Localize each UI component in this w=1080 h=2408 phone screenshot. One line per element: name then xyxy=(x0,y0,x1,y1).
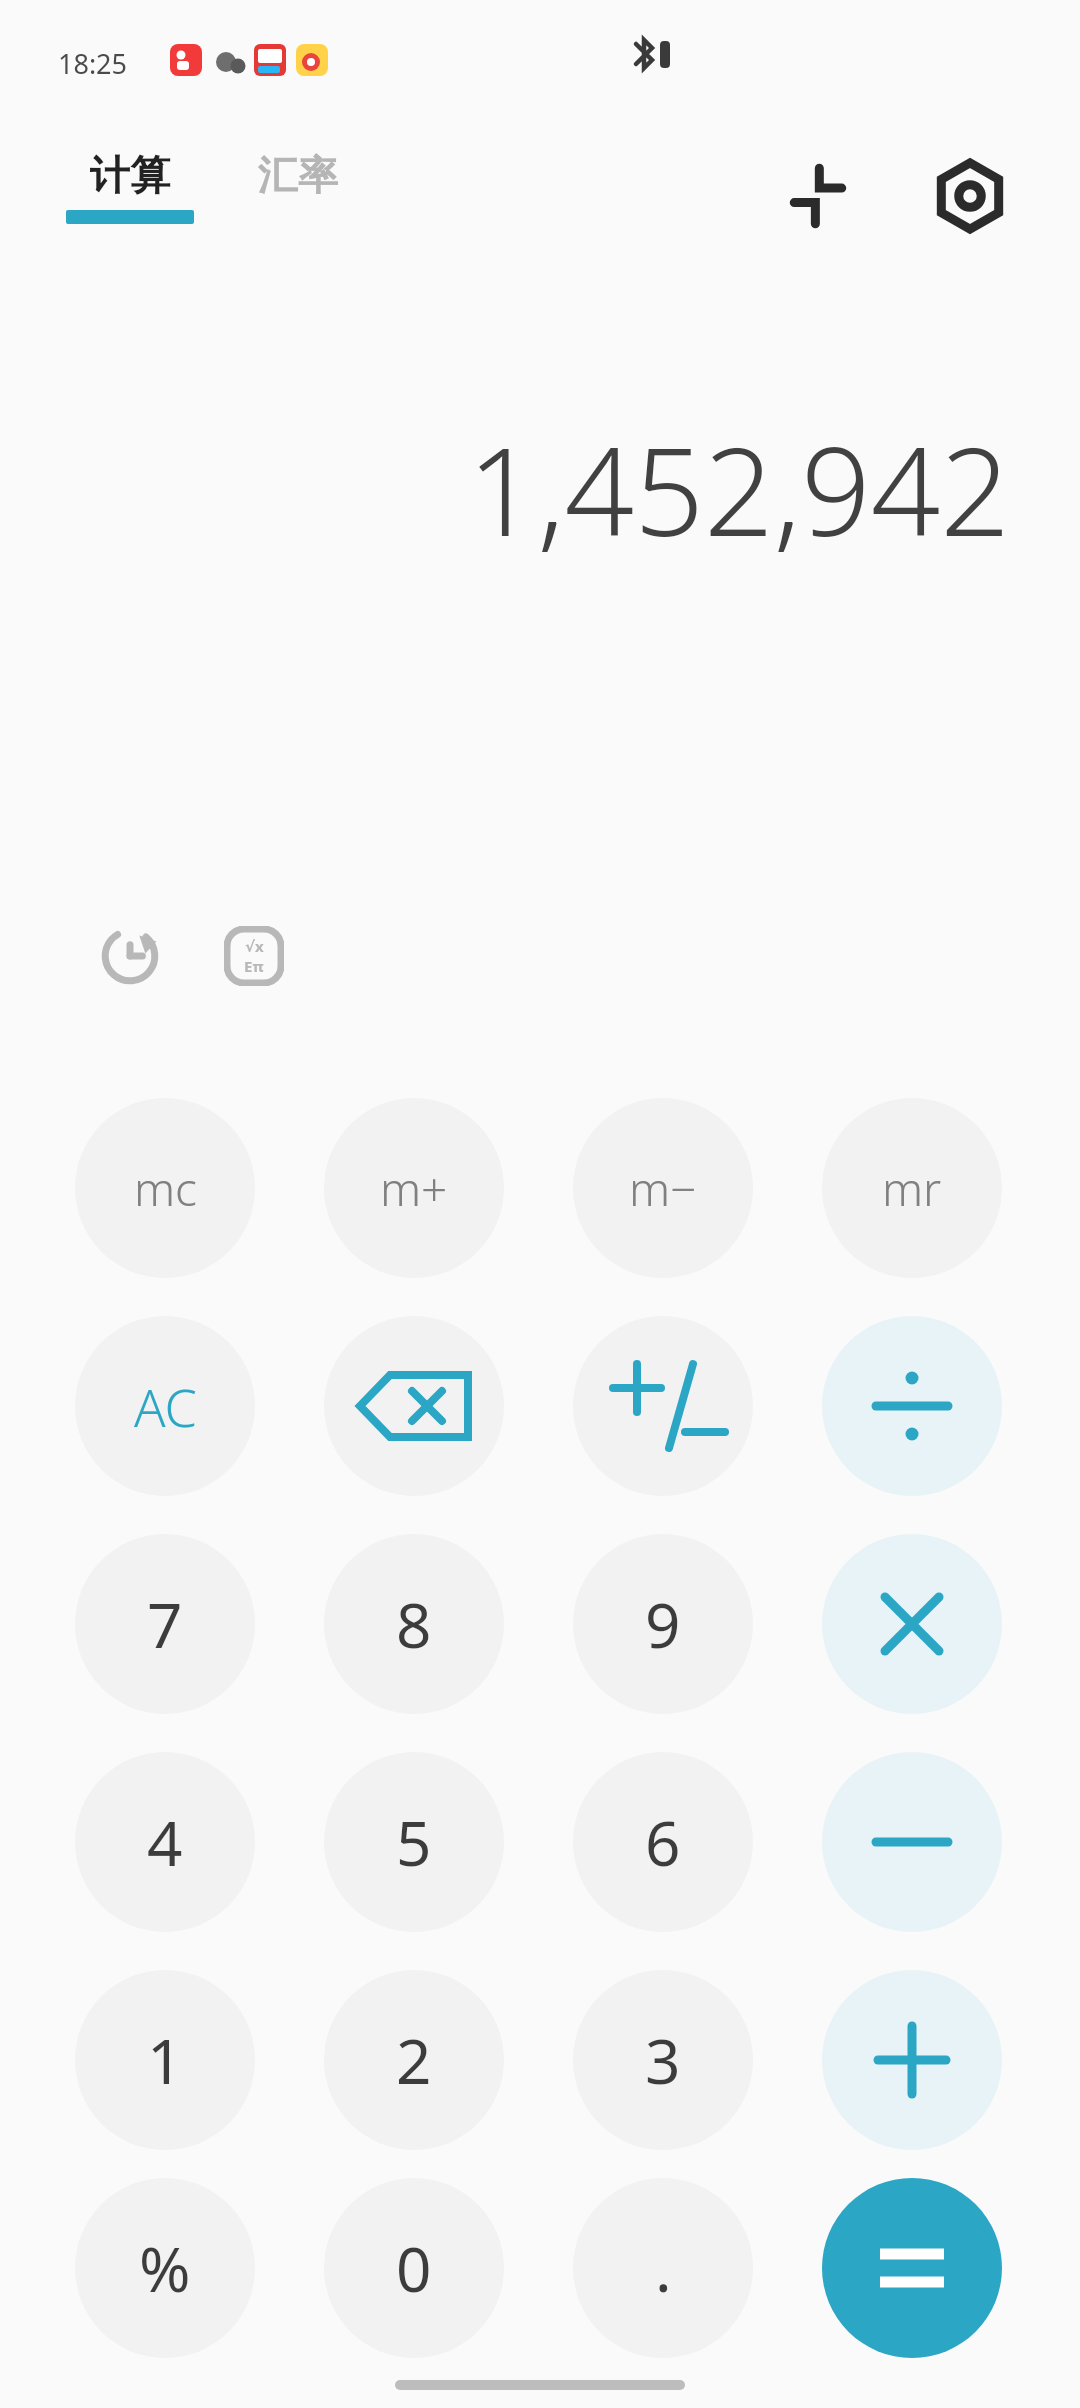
staticText: 计算 xyxy=(90,150,170,200)
button[interactable]: 汇率 xyxy=(258,150,338,200)
button[interactable]: History xyxy=(82,908,178,1004)
button[interactable]: Divide xyxy=(822,1316,1002,1496)
button[interactable]: m− xyxy=(573,1098,753,1278)
staticText: m+ xyxy=(380,1157,448,1220)
staticText: Eπ xyxy=(244,956,264,976)
button[interactable]: . xyxy=(573,2178,753,2358)
button[interactable]: Equals xyxy=(822,2178,1002,2358)
button[interactable]: % xyxy=(75,2178,255,2358)
staticText: 5 xyxy=(396,1800,432,1884)
staticText: 9 xyxy=(645,1582,681,1666)
button[interactable]: 7 xyxy=(75,1534,255,1714)
button[interactable]: Scientific mode xyxy=(206,908,302,1004)
staticText: 1,452,942 xyxy=(467,406,1010,572)
staticText: m− xyxy=(629,1157,697,1220)
staticText: 4 xyxy=(147,1800,183,1884)
staticText: 汇率 xyxy=(258,150,338,200)
staticText: mc xyxy=(134,1157,197,1220)
button[interactable]: 5 xyxy=(324,1752,504,1932)
button[interactable]: 2 xyxy=(324,1970,504,2150)
button[interactable]: Delete xyxy=(324,1316,504,1496)
button[interactable]: 计算 xyxy=(66,150,194,224)
button[interactable]: 1 xyxy=(75,1970,255,2150)
staticText: 3 xyxy=(645,2018,681,2102)
staticText: 0 xyxy=(396,2226,432,2310)
button[interactable]: mr xyxy=(822,1098,1002,1278)
button[interactable]: Collapse xyxy=(770,148,866,244)
staticText: 1 xyxy=(147,2018,183,2102)
button[interactable]: 4 xyxy=(75,1752,255,1932)
staticText: % xyxy=(139,2226,191,2310)
button[interactable]: Minus xyxy=(822,1752,1002,1932)
staticText: 2 xyxy=(396,2018,432,2102)
button[interactable]: 0 xyxy=(324,2178,504,2358)
button[interactable]: 9 xyxy=(573,1534,753,1714)
button[interactable]: 6 xyxy=(573,1752,753,1932)
staticText: mr xyxy=(882,1157,942,1220)
button[interactable]: Multiply xyxy=(822,1534,1002,1714)
staticText: 7 xyxy=(147,1582,183,1666)
button[interactable]: Settings xyxy=(920,146,1020,246)
button[interactable]: 3 xyxy=(573,1970,753,2150)
staticText: √x xyxy=(245,936,264,956)
button[interactable]: mc xyxy=(75,1098,255,1278)
button[interactable]: Plus minus xyxy=(573,1316,753,1496)
button[interactable]: 8 xyxy=(324,1534,504,1714)
button[interactable]: m+ xyxy=(324,1098,504,1278)
staticText: 8 xyxy=(396,1582,432,1666)
button[interactable]: Plus xyxy=(822,1970,1002,2150)
button[interactable]: AC xyxy=(75,1316,255,1496)
staticText: AC xyxy=(134,1371,197,1442)
staticText: 18:25 xyxy=(58,45,128,82)
staticText: . xyxy=(655,2226,672,2310)
staticText: 6 xyxy=(645,1800,681,1884)
